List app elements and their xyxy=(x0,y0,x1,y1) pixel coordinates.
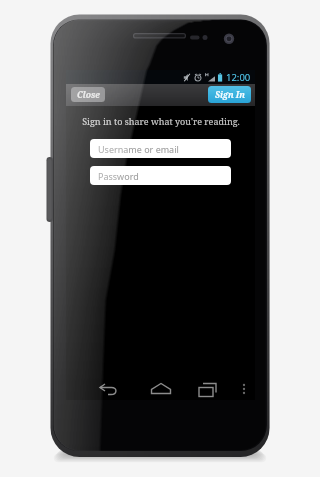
staticText: Sign In xyxy=(215,89,245,101)
staticText: Password xyxy=(98,170,139,182)
button[interactable]: Username or email xyxy=(90,139,231,158)
staticText: 12:00 xyxy=(226,71,251,84)
button[interactable]: Close xyxy=(71,87,105,102)
staticText: Sign in to share what you're reading. xyxy=(82,115,240,127)
staticText: Username or email xyxy=(98,143,179,155)
staticText: Close xyxy=(77,89,100,101)
button[interactable]: Recent apps xyxy=(193,378,221,400)
button[interactable]: Password xyxy=(90,166,231,185)
button[interactable]: Back xyxy=(95,378,123,400)
button[interactable]: Home xyxy=(147,378,175,400)
button[interactable]: More options xyxy=(237,378,251,400)
button[interactable]: Sign In xyxy=(208,86,251,103)
